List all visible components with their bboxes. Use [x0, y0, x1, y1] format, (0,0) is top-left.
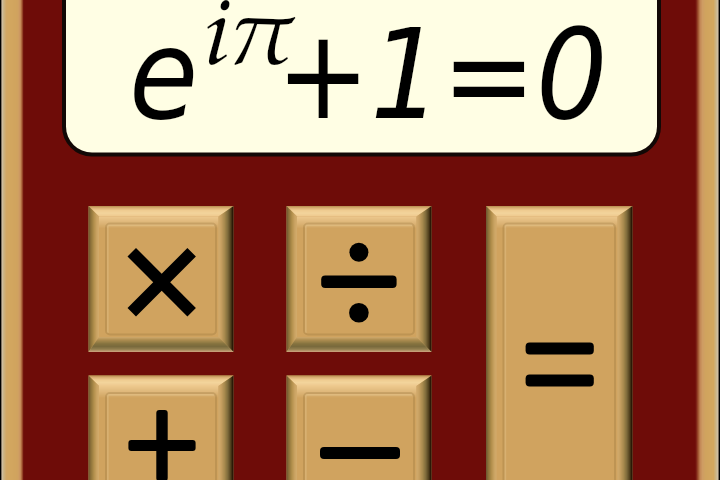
button[interactable]: Equals: [0, 0, 720, 480]
button[interactable]: Minus: [0, 0, 720, 480]
button[interactable]: Multiply: [0, 0, 720, 480]
button[interactable]: Divide: [0, 0, 720, 480]
button[interactable]: Plus: [0, 0, 720, 480]
